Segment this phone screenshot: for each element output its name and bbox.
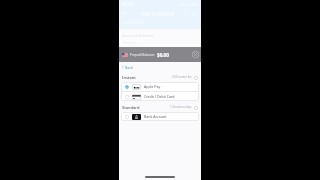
staticText: 2.5% service fee <box>172 75 192 79</box>
button[interactable]: Bank Account <box>121 112 199 121</box>
button[interactable]: Info <box>193 105 198 110</box>
staticText: Credit / Debit Card <box>144 94 175 99</box>
staticText: Standard <box>122 105 140 110</box>
button[interactable]: Back <box>121 64 133 70</box>
button[interactable]: Close <box>191 50 200 59</box>
staticText: Instant <box>122 75 136 80</box>
staticText: Apple Pay <box>144 84 161 89</box>
button[interactable]: Info <box>193 75 198 80</box>
staticText: Prepaid Balance: <box>130 53 155 57</box>
staticText: Bank Account <box>144 114 167 119</box>
staticText: Back <box>125 65 133 70</box>
staticText: $0.00 <box>157 52 169 58</box>
staticText: Account Balance <box>122 33 154 38</box>
button[interactable]: Apple Pay <box>121 82 199 91</box>
button[interactable]: Credit / Debit Card <box>121 92 199 101</box>
staticText: 1-3 business days <box>170 105 192 109</box>
